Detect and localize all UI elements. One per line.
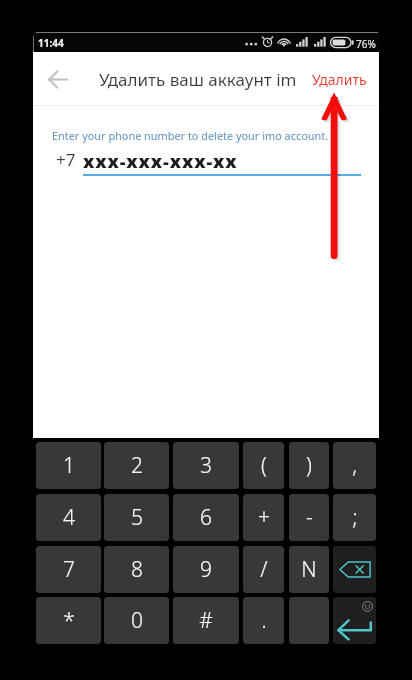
button[interactable]: Enter [333, 597, 376, 644]
button[interactable]: N [289, 546, 329, 593]
staticText: Удалить ваш аккаунт im [99, 68, 297, 91]
button[interactable]: 3 [173, 442, 239, 489]
staticText: ; [352, 503, 358, 532]
staticText: 4 [63, 503, 75, 532]
staticText: , [352, 451, 357, 480]
button[interactable]: + [243, 494, 284, 541]
staticText: +7 [56, 148, 76, 171]
button[interactable]: ( [243, 442, 284, 489]
button[interactable]: - [289, 494, 329, 541]
staticText: 11:44 [38, 36, 64, 50]
button[interactable]: 1 [36, 442, 101, 489]
button[interactable]: 8 [104, 546, 169, 593]
button[interactable]: Back [33, 54, 82, 104]
staticText: 8 [131, 555, 143, 584]
button[interactable]: ; [333, 494, 376, 541]
staticText: Enter your phone number to delete your i… [52, 128, 329, 143]
button[interactable]: . [243, 597, 284, 644]
button[interactable]: ) [289, 442, 329, 489]
staticText: 1 [63, 451, 75, 480]
staticText: Удалить [312, 70, 367, 89]
staticText: + [258, 503, 270, 532]
button[interactable] [289, 597, 329, 644]
button[interactable]: 4 [36, 494, 101, 541]
staticText: 2 [131, 451, 143, 480]
staticText: 7 [63, 555, 75, 584]
staticText: 0 [131, 606, 143, 635]
button[interactable]: 9 [173, 546, 239, 593]
staticText: 9 [200, 555, 212, 584]
button[interactable]: 6 [173, 494, 239, 541]
staticText: # [199, 606, 213, 635]
button[interactable]: # [173, 597, 239, 644]
button[interactable]: / [243, 546, 284, 593]
staticText: . [261, 606, 267, 635]
staticText: 5 [131, 503, 143, 532]
staticText: / [260, 555, 268, 584]
staticText: N [301, 555, 317, 584]
button[interactable]: 5 [104, 494, 169, 541]
button[interactable]: 2 [104, 442, 169, 489]
button[interactable]: 0 [104, 597, 169, 644]
staticText: xxx-xxx-xxx-xx [83, 149, 238, 174]
button[interactable]: * [36, 597, 101, 644]
staticText: 76% [356, 37, 376, 51]
button[interactable]: Backspace [333, 546, 376, 593]
staticText: ) [306, 451, 312, 480]
staticText: 6 [200, 503, 212, 532]
button[interactable]: 7 [36, 546, 101, 593]
staticText: ( [261, 451, 267, 480]
button[interactable]: Удалить [305, 60, 373, 98]
staticText: - [306, 503, 313, 532]
staticText: 3 [200, 451, 212, 480]
button[interactable]: , [333, 442, 376, 489]
staticText: * [63, 606, 75, 635]
